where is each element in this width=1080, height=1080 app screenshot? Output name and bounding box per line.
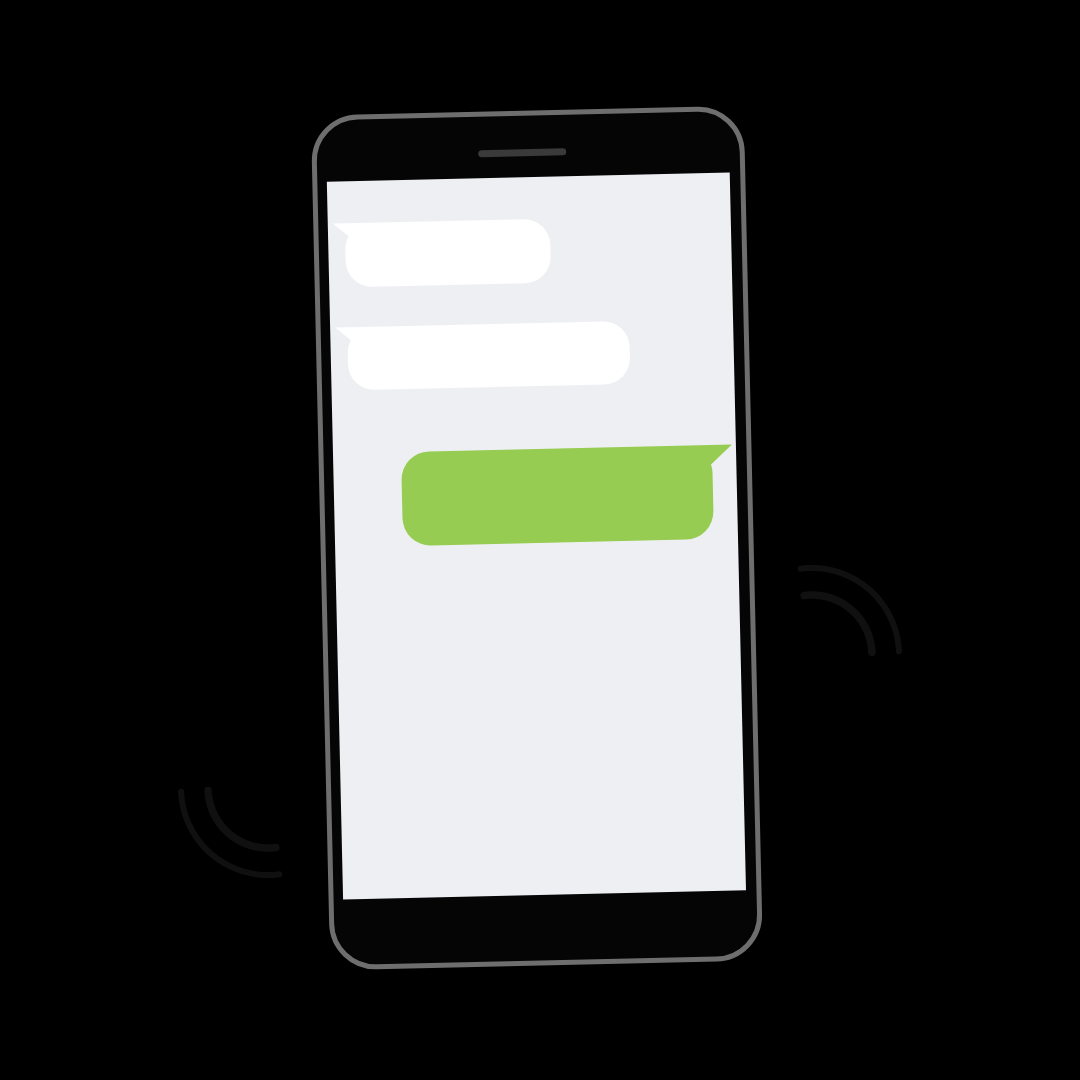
button[interactable]: Phone receiving chat messages [0,0,1080,1080]
